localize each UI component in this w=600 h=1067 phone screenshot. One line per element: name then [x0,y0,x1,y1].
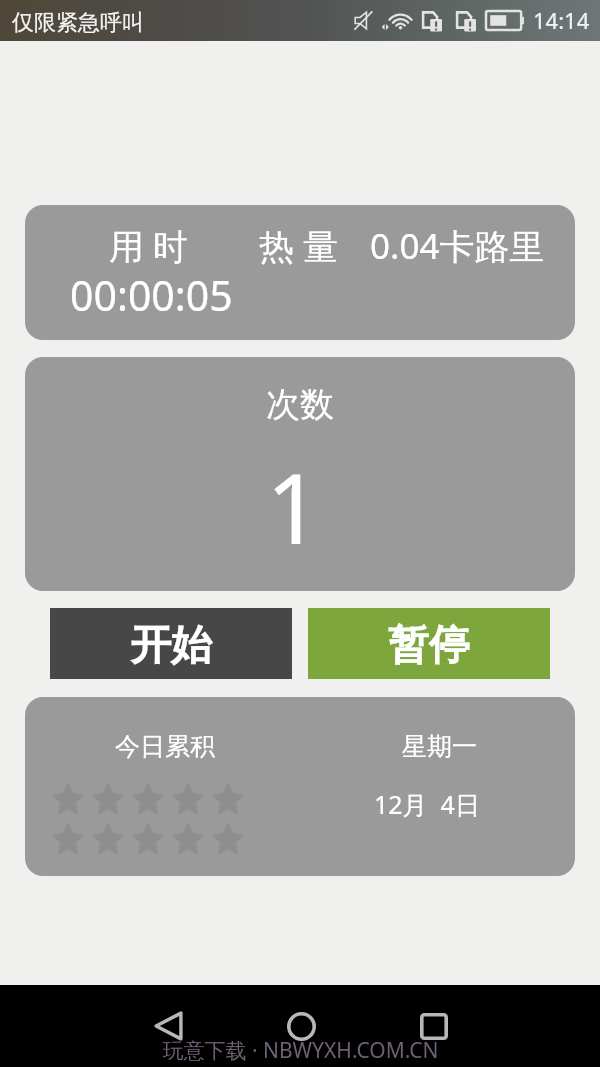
staticText: 仅限紧急呼叫 [12,9,144,37]
staticText: 玩意下载 · NBWYXH.COM.CN [162,1036,439,1065]
button[interactable]: 次数 [25,357,575,591]
staticText: 次数 [266,383,334,426]
button[interactable]: 暂停 [308,608,550,679]
staticText: 今日累积 [115,731,215,762]
staticText: 0.04卡路里 [370,222,545,270]
staticText: 14:14 [533,5,590,35]
staticText: 1 [266,441,321,572]
staticText: 星期一 [402,731,477,762]
button[interactable]: 今日累积 [25,697,575,876]
staticText: 热 量 [259,222,339,270]
button[interactable]: 开始 [50,608,292,679]
button[interactable]: 用 时 [25,205,575,340]
staticText: 12月 4日 [374,787,480,821]
staticText: 用 时 [109,222,189,270]
button[interactable]: Home [261,986,341,1066]
button[interactable]: Back [128,986,208,1066]
staticText: 开始 [130,620,212,672]
staticText: 00:00:05 [70,267,233,323]
button[interactable]: Recents [394,986,474,1066]
staticText: 暂停 [388,620,470,672]
